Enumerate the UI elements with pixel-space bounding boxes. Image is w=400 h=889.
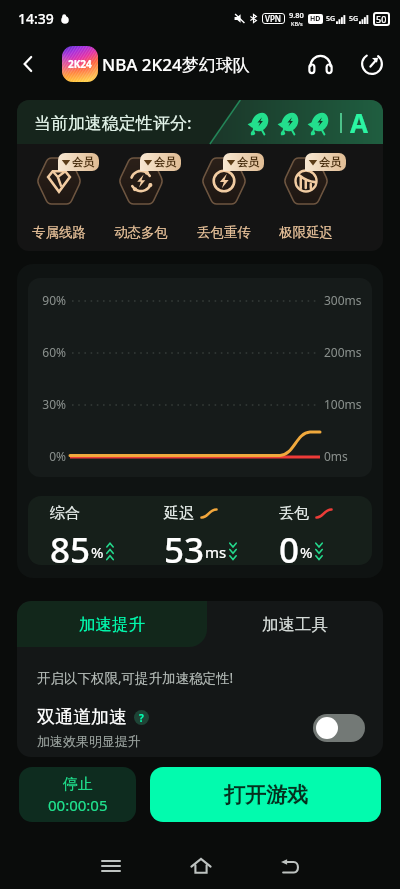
staticText: 14:39 (18, 9, 54, 28)
staticText: 60% (36, 344, 66, 360)
staticText: 会员 (72, 155, 94, 169)
staticText: 200ms (324, 344, 362, 360)
staticText: 加速效果明显提升 (37, 733, 141, 749)
staticText: 加速工具 (262, 614, 328, 635)
staticText: 专属线路 (32, 224, 86, 241)
staticText: 会员 (319, 155, 341, 169)
staticText: 100ms (324, 396, 362, 412)
button[interactable]: 会员 (100, 144, 182, 251)
staticText: ms (205, 542, 227, 562)
staticText: KB/s (291, 20, 303, 27)
button[interactable]: 打开游戏 (150, 767, 381, 822)
staticText: % (300, 542, 313, 562)
staticText: 极限延迟 (279, 224, 333, 241)
button[interactable]: Back (264, 840, 316, 889)
staticText: 综合 (50, 504, 80, 523)
staticText: 53 (164, 526, 205, 565)
staticText: % (91, 542, 104, 562)
staticText: 00:00:05 (48, 795, 108, 815)
staticText: 双通道加速 (37, 706, 127, 729)
button[interactable]: Refresh (353, 45, 391, 83)
button[interactable]: Back (10, 46, 46, 82)
button[interactable]: 加速工具 (207, 601, 383, 647)
staticText: 动态多包 (114, 224, 168, 241)
staticText: 90% (36, 292, 66, 308)
button[interactable]: 加速提升 (17, 601, 207, 647)
staticText: 打开游戏 (224, 782, 308, 808)
staticText: 0 (279, 526, 300, 565)
button[interactable]: Customer support (301, 45, 339, 83)
staticText: 30% (36, 396, 66, 412)
staticText: 2K24 (68, 57, 92, 71)
staticText: 50 (376, 13, 387, 25)
button[interactable]: Recent apps (85, 840, 137, 889)
staticText: 丢包重传 (197, 224, 251, 241)
staticText: 会员 (154, 155, 176, 169)
button[interactable]: 会员 (183, 144, 265, 251)
staticText: A (350, 105, 368, 140)
staticText: VPN (265, 13, 282, 24)
button[interactable]: 会员 (265, 144, 347, 251)
staticText: 开启以下权限,可提升加速稳定性! (37, 669, 234, 687)
staticText: HD (310, 14, 321, 24)
staticText: 5G (326, 14, 336, 24)
staticText: 加速提升 (79, 614, 145, 635)
staticText: 会员 (237, 155, 259, 169)
button[interactable]: Help (134, 710, 149, 725)
button[interactable]: 会员 (18, 144, 100, 251)
button[interactable]: Dual channel toggle (313, 714, 365, 742)
staticText: 0ms (324, 448, 348, 464)
staticText: 300ms (324, 292, 362, 308)
staticText: 0% (36, 448, 66, 464)
button[interactable]: 停止 (19, 767, 136, 822)
staticText: 当前加速稳定性评分: (34, 111, 192, 134)
button[interactable]: Home (175, 840, 227, 889)
staticText: ? (139, 711, 144, 725)
staticText: NBA 2K24梦幻球队 (102, 53, 250, 76)
staticText: 停止 (63, 775, 93, 794)
staticText: 延迟 (164, 504, 194, 523)
staticText: 丢包 (279, 504, 309, 523)
staticText: 85 (50, 526, 91, 565)
staticText: 5G (349, 14, 359, 24)
staticText: 9.80 (289, 10, 304, 20)
